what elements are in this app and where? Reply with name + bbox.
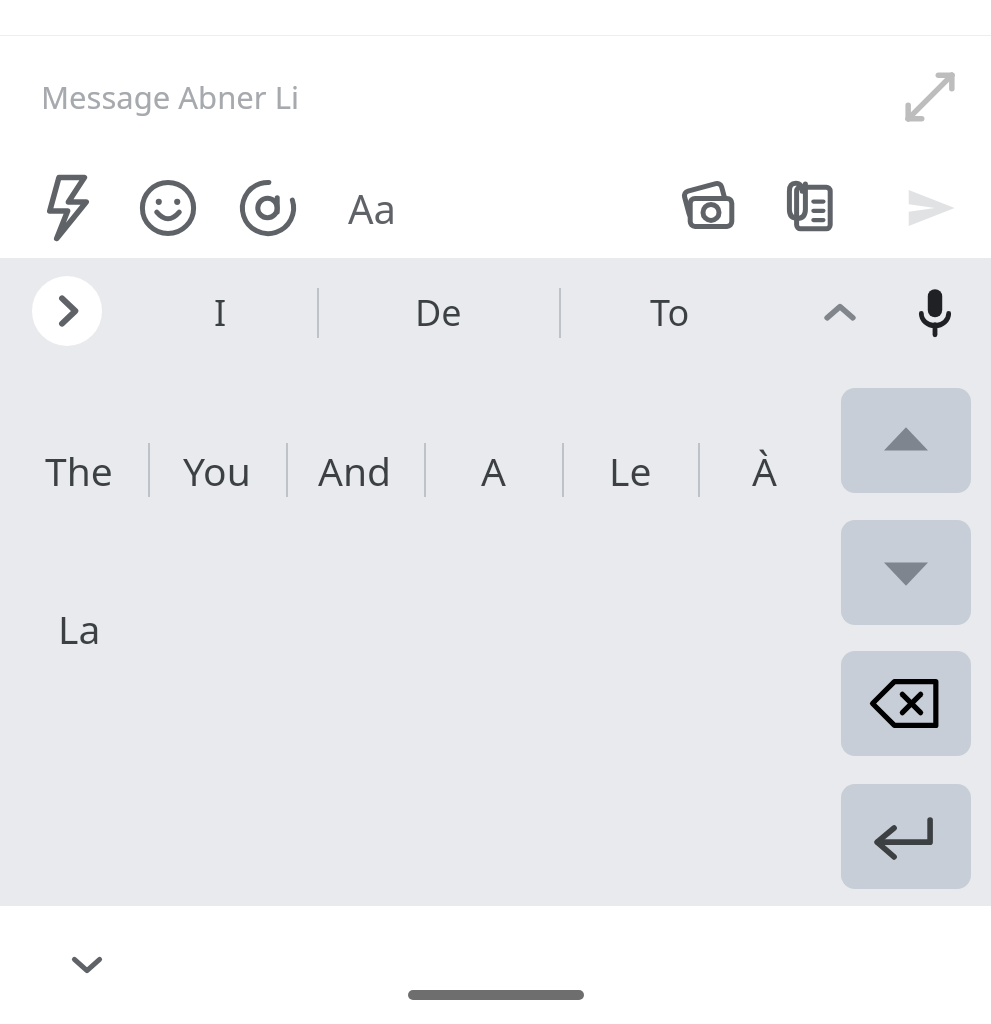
staticText: You bbox=[183, 444, 251, 497]
button[interactable]: Move up bbox=[841, 388, 971, 493]
staticText: À bbox=[752, 444, 777, 497]
button[interactable]: Quick actions bbox=[28, 168, 108, 248]
button[interactable]: I bbox=[130, 276, 310, 348]
button[interactable]: And bbox=[290, 424, 420, 516]
staticText: Message Abner Li bbox=[41, 76, 299, 118]
staticText: And bbox=[318, 444, 392, 497]
button[interactable]: Emoji bbox=[128, 168, 208, 248]
button[interactable]: À bbox=[702, 424, 826, 516]
button[interactable]: Backspace bbox=[841, 651, 971, 756]
staticText: I bbox=[214, 288, 227, 337]
button[interactable]: Expand suggestions bbox=[806, 278, 874, 346]
button[interactable]: More suggestions bbox=[32, 276, 102, 346]
button[interactable]: Voice input bbox=[897, 274, 973, 350]
button[interactable]: Hide keyboard bbox=[52, 930, 122, 1000]
staticText: Le bbox=[609, 444, 652, 497]
button[interactable]: Mention bbox=[228, 168, 308, 248]
button[interactable]: To bbox=[580, 276, 760, 348]
button[interactable]: Expand compose field bbox=[891, 58, 969, 136]
button[interactable]: Enter bbox=[841, 784, 971, 889]
button[interactable]: De bbox=[340, 276, 536, 348]
button[interactable]: La bbox=[16, 582, 142, 674]
button[interactable]: Aa bbox=[330, 166, 414, 250]
button[interactable]: The bbox=[16, 424, 142, 516]
button[interactable]: Message Abner Li bbox=[0, 36, 991, 158]
button[interactable]: A bbox=[428, 424, 558, 516]
staticText: To bbox=[650, 288, 690, 337]
button[interactable]: Attach file bbox=[771, 168, 851, 248]
staticText: De bbox=[415, 288, 462, 337]
button[interactable]: Send bbox=[890, 168, 970, 248]
button[interactable]: Move down bbox=[841, 520, 971, 625]
staticText: Aa bbox=[348, 181, 396, 235]
staticText: The bbox=[45, 444, 113, 497]
button[interactable]: You bbox=[152, 424, 282, 516]
button[interactable]: Le bbox=[566, 424, 694, 516]
button[interactable]: Camera bbox=[671, 168, 751, 248]
staticText: A bbox=[481, 444, 506, 497]
staticText: La bbox=[58, 602, 101, 655]
